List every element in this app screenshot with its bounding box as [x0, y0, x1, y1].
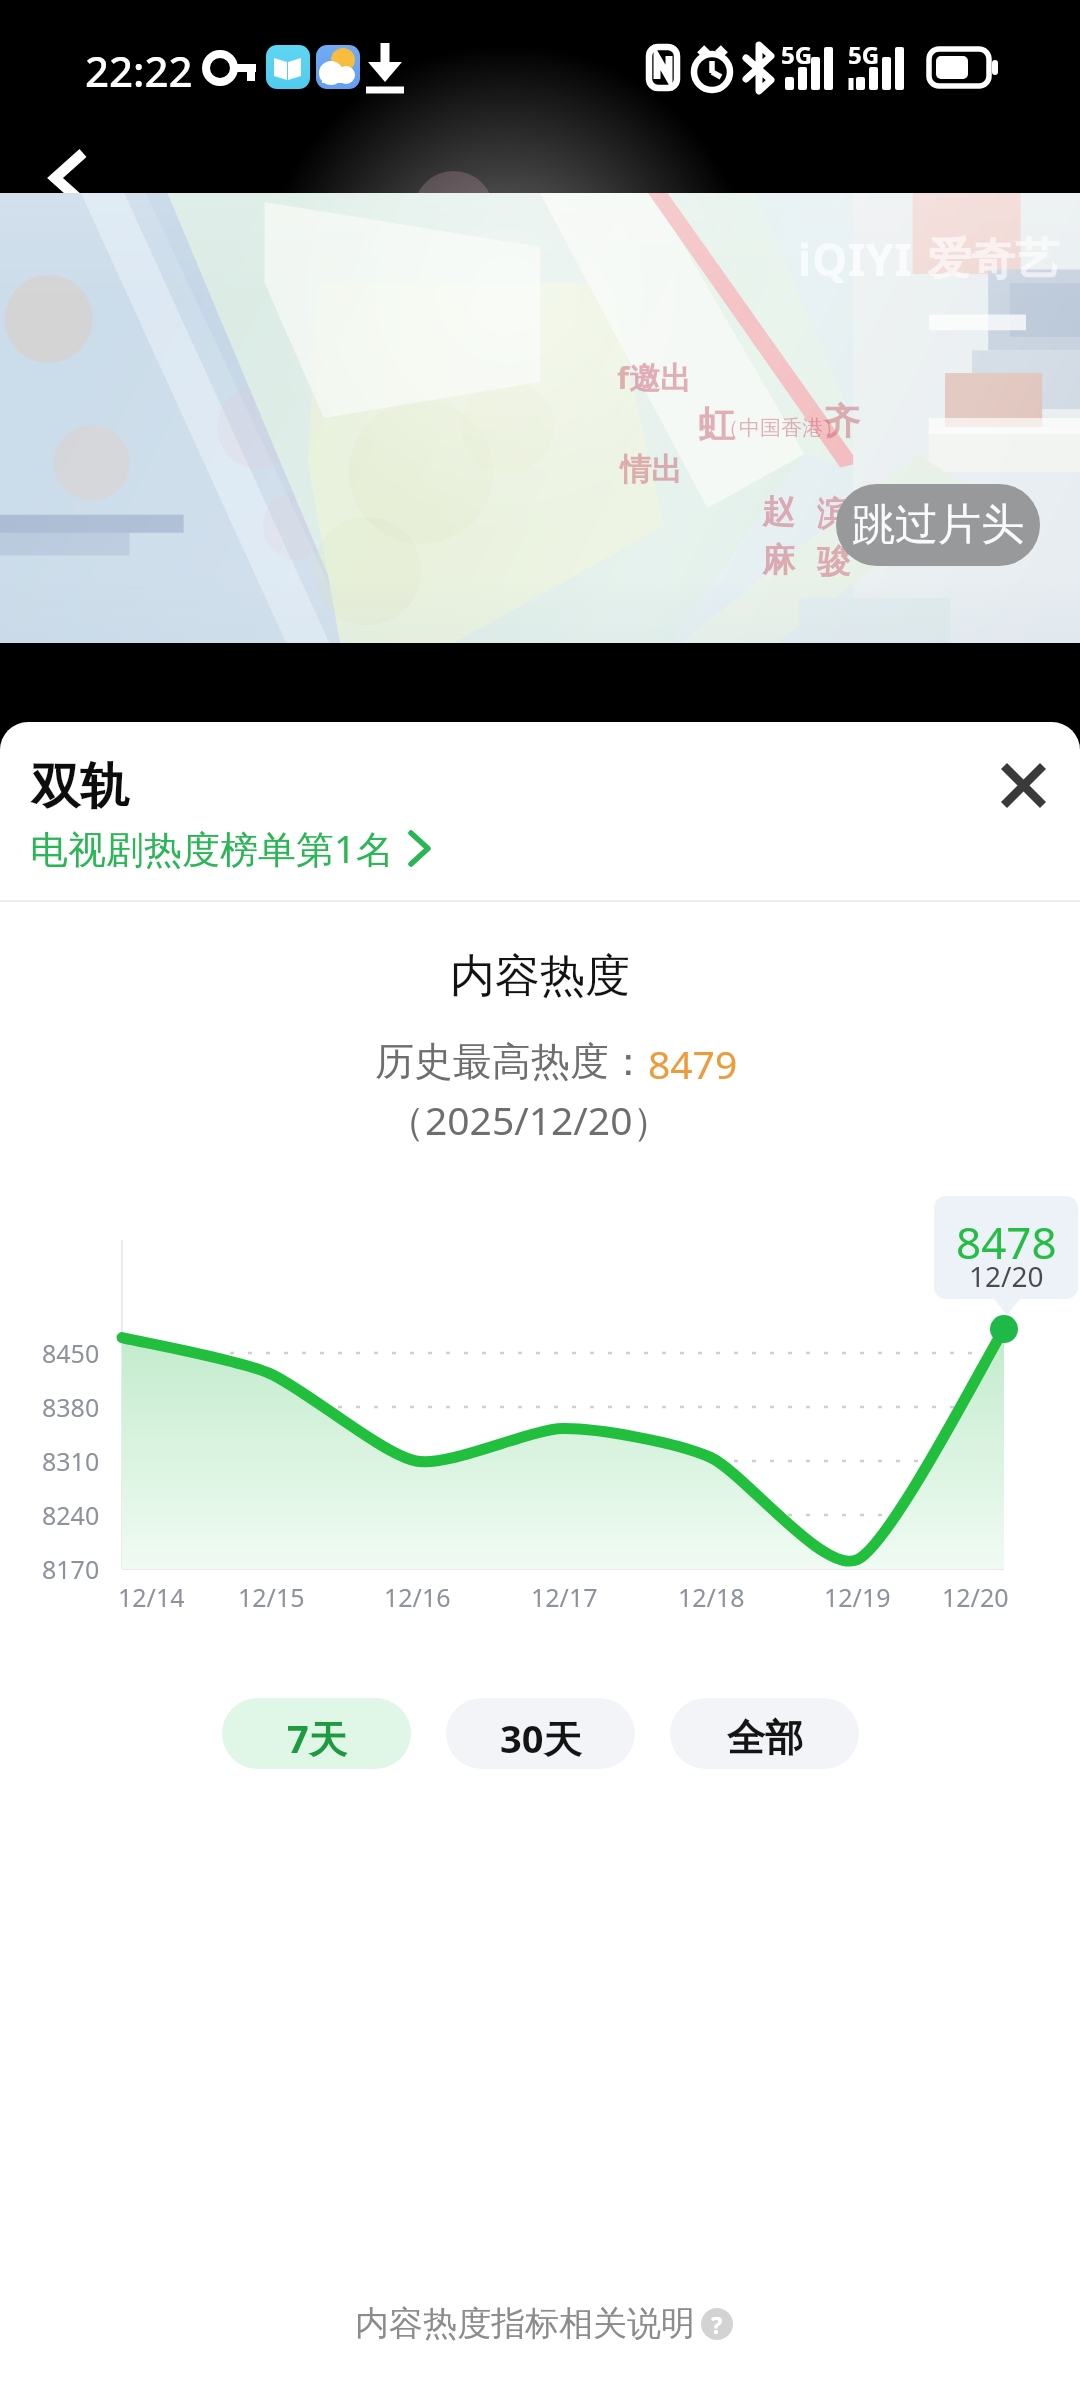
- staticText: 8479: [648, 1037, 738, 1090]
- staticText: 全部: [727, 1714, 803, 1762]
- staticText: 5G: [781, 38, 813, 71]
- staticText: 8450: [42, 1336, 100, 1370]
- staticText: 8380: [42, 1390, 100, 1424]
- staticText: （2025/12/20）: [386, 1093, 672, 1146]
- staticText: iQIYI: [798, 229, 913, 289]
- staticText: 8310: [42, 1444, 100, 1478]
- staticText: 12/15: [238, 1580, 305, 1614]
- staticText: 12/18: [678, 1580, 745, 1614]
- staticText: 电视剧热度榜单第1名: [30, 822, 394, 874]
- staticText: 虹: [698, 402, 734, 447]
- staticText: 22:22: [85, 42, 193, 99]
- staticText: 爱奇艺: [927, 232, 1059, 287]
- staticText: （中国香港）: [718, 415, 844, 441]
- button[interactable]: Close: [978, 740, 1068, 830]
- button[interactable]: Back: [24, 133, 114, 223]
- button[interactable]: 30天: [446, 1698, 635, 1769]
- button[interactable]: 跳过片头: [836, 484, 1040, 566]
- staticText: 12/17: [531, 1580, 598, 1614]
- staticText: 30天: [500, 1712, 582, 1764]
- staticText: 12/19: [824, 1580, 891, 1614]
- button[interactable]: 全部: [670, 1698, 859, 1769]
- button[interactable]: 7天: [222, 1698, 411, 1769]
- staticText: 5G: [848, 38, 880, 71]
- staticText: 内容热度指标相关说明: [355, 2302, 695, 2345]
- staticText: 8170: [42, 1552, 100, 1586]
- staticText: 赵 麻: [762, 491, 795, 581]
- staticText: 12/16: [384, 1580, 451, 1614]
- staticText: 齐: [824, 399, 860, 444]
- staticText: 情出: [620, 450, 682, 489]
- button[interactable]: 内容热度指标相关说明: [0, 2302, 1080, 2345]
- staticText: 8240: [42, 1498, 100, 1532]
- staticText: 7天: [287, 1712, 347, 1764]
- button[interactable]: 电视剧热度榜单第1名: [30, 822, 438, 874]
- staticText: 跳过片头: [852, 498, 1024, 552]
- staticText: 历史最高热度：: [375, 1037, 648, 1086]
- staticText: 12/20: [969, 1257, 1044, 1295]
- staticText: f邀出: [617, 356, 691, 398]
- staticText: 滨 骏: [817, 493, 850, 583]
- staticText: 12/14: [118, 1580, 185, 1614]
- staticText: 8478: [956, 1212, 1057, 1272]
- staticText: 内容热度: [450, 948, 630, 1005]
- staticText: ?: [711, 2308, 723, 2340]
- staticText: 12/20: [942, 1580, 1009, 1614]
- staticText: 双轨: [31, 756, 129, 818]
